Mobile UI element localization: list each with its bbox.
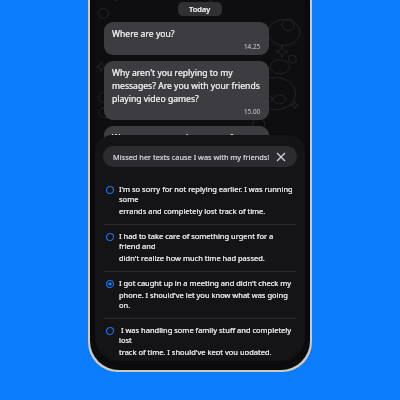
button[interactable]: I had to take care of something urgent f… — [95, 225, 305, 271]
staticText: I was handling some family stuff and com… — [119, 325, 295, 345]
staticText: I'm so sorry for not replying earlier. I… — [119, 184, 295, 204]
button[interactable]: We were supposed to go out for dinner — [104, 126, 269, 184]
staticText: track of time. I should've kept you upda… — [119, 347, 272, 355]
staticText: messages? Are you with your friends — [112, 80, 260, 92]
staticText: I got caught up in a meeting and didn't … — [119, 278, 292, 288]
staticText: Today — [189, 4, 211, 14]
staticText: Where are you? — [112, 28, 175, 40]
staticText: errands and completely lost track of tim… — [119, 206, 266, 216]
button[interactable]: I got caught up in a meeting and didn't … — [95, 272, 305, 318]
staticText: playing video games? — [112, 93, 199, 105]
staticText: We were supposed to go out for dinner — [112, 132, 261, 156]
staticText: 14.25 — [244, 42, 261, 51]
button[interactable]: Where are you? — [104, 22, 269, 55]
button[interactable]: Clear — [275, 151, 287, 163]
button[interactable]: Missed her texts cause I was with my fri… — [103, 146, 297, 167]
button[interactable]: Today — [189, 4, 211, 14]
staticText: didn't realize how much time had passed. — [119, 253, 265, 263]
staticText: phone. I should've let you know what was… — [119, 290, 295, 310]
staticText: Missed her texts cause I was with my fri… — [113, 152, 270, 162]
staticText: 15.00 — [244, 107, 261, 116]
staticText: I had to take care of something urgent f… — [119, 231, 295, 251]
button[interactable]: I'm so sorry for not replying earlier. I… — [95, 178, 305, 224]
button[interactable]: Why aren't you replying to my — [104, 61, 269, 120]
staticText: tonight 🙊 — [112, 157, 155, 169]
staticText: Why aren't you replying to my — [112, 67, 233, 79]
button[interactable]: I was handling some family stuff and com… — [95, 319, 305, 361]
